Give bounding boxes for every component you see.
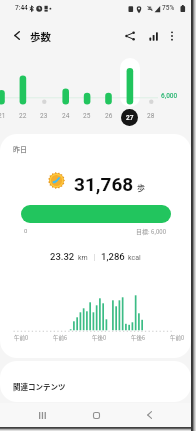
staticText: 22 [19, 112, 27, 120]
button[interactable]: Home [84, 403, 108, 427]
staticText: 23 [40, 112, 48, 120]
staticText: 1,286 [101, 251, 125, 262]
staticText: 28 [147, 112, 155, 120]
staticText: 昨日 [13, 144, 27, 154]
staticText: 21 [0, 112, 6, 120]
staticText: 23.32 [50, 251, 75, 262]
button[interactable]: Day 27 selected [120, 58, 140, 107]
staticText: km [78, 254, 88, 262]
staticText: 24 [62, 112, 70, 120]
staticText: 歩数 [30, 29, 51, 44]
button[interactable]: Statistics [144, 26, 163, 45]
staticText: 午後6 [131, 334, 146, 342]
staticText: 午後0 [92, 334, 107, 342]
staticText: 歩 [137, 182, 145, 194]
button[interactable]: Recent apps [30, 403, 54, 427]
button[interactable]: Back [7, 26, 26, 45]
staticText: 午前0 [170, 334, 185, 342]
button[interactable]: Share [120, 26, 139, 45]
staticText: kcal [128, 254, 141, 262]
staticText: 0 [24, 227, 28, 234]
button[interactable]: Back [137, 403, 161, 427]
staticText: 75% [162, 4, 175, 12]
staticText: 午前0 [14, 334, 29, 342]
button[interactable]: Progress 31768 of 6000 steps [21, 205, 171, 223]
button[interactable]: More options [162, 26, 181, 45]
staticText: 7:44 [15, 4, 28, 12]
staticText: 25 [83, 112, 91, 120]
staticText: 26 [105, 112, 113, 120]
staticText: 27 [126, 114, 134, 122]
staticText: 午前6 [53, 334, 68, 342]
staticText: 目標: 6,000 [136, 227, 167, 236]
staticText: 31,768 [74, 173, 134, 195]
staticText: 関連コンテンツ [13, 381, 66, 392]
staticText: 6,000 [161, 92, 178, 100]
